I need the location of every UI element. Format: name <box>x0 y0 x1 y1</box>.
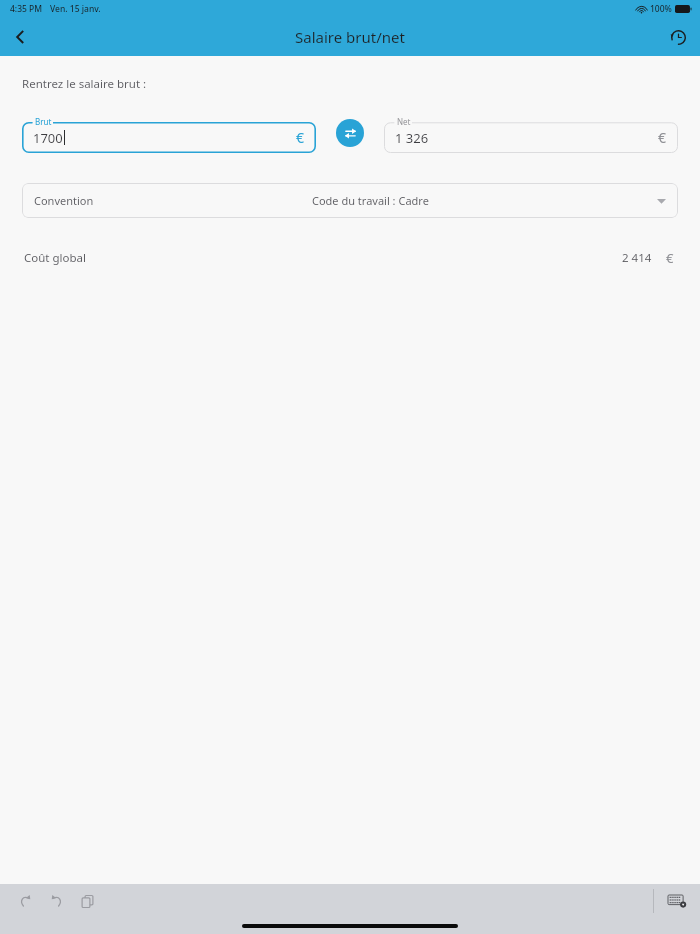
staticText: Rentrez le salaire brut : <box>22 76 147 92</box>
button[interactable]: Net <box>384 113 678 153</box>
button[interactable]: Convention <box>22 183 678 218</box>
button[interactable]: Undo <box>12 888 38 914</box>
staticText: 1700 <box>33 129 63 147</box>
staticText: Coût global <box>24 250 86 266</box>
button[interactable]: Brut <box>22 113 316 153</box>
staticText: 2 414 <box>622 250 652 266</box>
button[interactable]: Hide keyboard <box>664 888 690 914</box>
staticText: Salaire brut/net <box>295 27 405 47</box>
staticText: Brut <box>35 116 52 127</box>
button[interactable]: Paste <box>74 888 100 914</box>
button[interactable]: History <box>656 18 700 56</box>
staticText: Code du travail : Cadre <box>312 193 429 208</box>
staticText: Convention <box>34 193 94 208</box>
staticText: 4:35 PM <box>10 3 43 15</box>
staticText: 1 326 <box>395 129 429 147</box>
button[interactable]: Swap brut and net <box>336 119 364 147</box>
button[interactable]: Back <box>0 18 40 56</box>
staticText: 100% <box>650 3 672 15</box>
button[interactable]: Redo <box>43 888 69 914</box>
staticText: € <box>666 249 674 267</box>
staticText: Net <box>397 116 411 127</box>
staticText: € <box>658 128 667 147</box>
staticText: Ven. 15 janv. <box>50 3 101 15</box>
staticText: € <box>296 128 305 147</box>
